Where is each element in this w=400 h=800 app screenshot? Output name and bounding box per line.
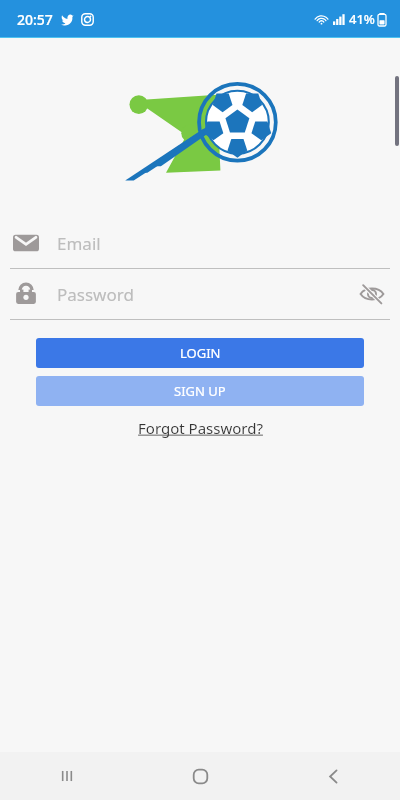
button[interactable]: Recents xyxy=(0,752,134,800)
staticText: Forgot Password? xyxy=(138,418,263,438)
button[interactable]: Forgot Password? xyxy=(134,414,267,442)
staticText: LOGIN xyxy=(180,344,221,362)
button[interactable]: Password xyxy=(0,269,400,319)
button[interactable]: SIGN UP xyxy=(36,376,364,406)
staticText: Password xyxy=(57,283,134,306)
staticText: Email xyxy=(57,232,101,255)
staticText: 41% xyxy=(349,10,375,28)
button[interactable]: Back xyxy=(267,752,400,800)
button[interactable]: Show password xyxy=(350,272,394,316)
button[interactable]: Home xyxy=(134,752,267,800)
staticText: 20:57 xyxy=(17,10,53,29)
button[interactable]: Email xyxy=(0,218,400,268)
button[interactable]: LOGIN xyxy=(36,338,364,368)
staticText: SIGN UP xyxy=(174,382,226,400)
